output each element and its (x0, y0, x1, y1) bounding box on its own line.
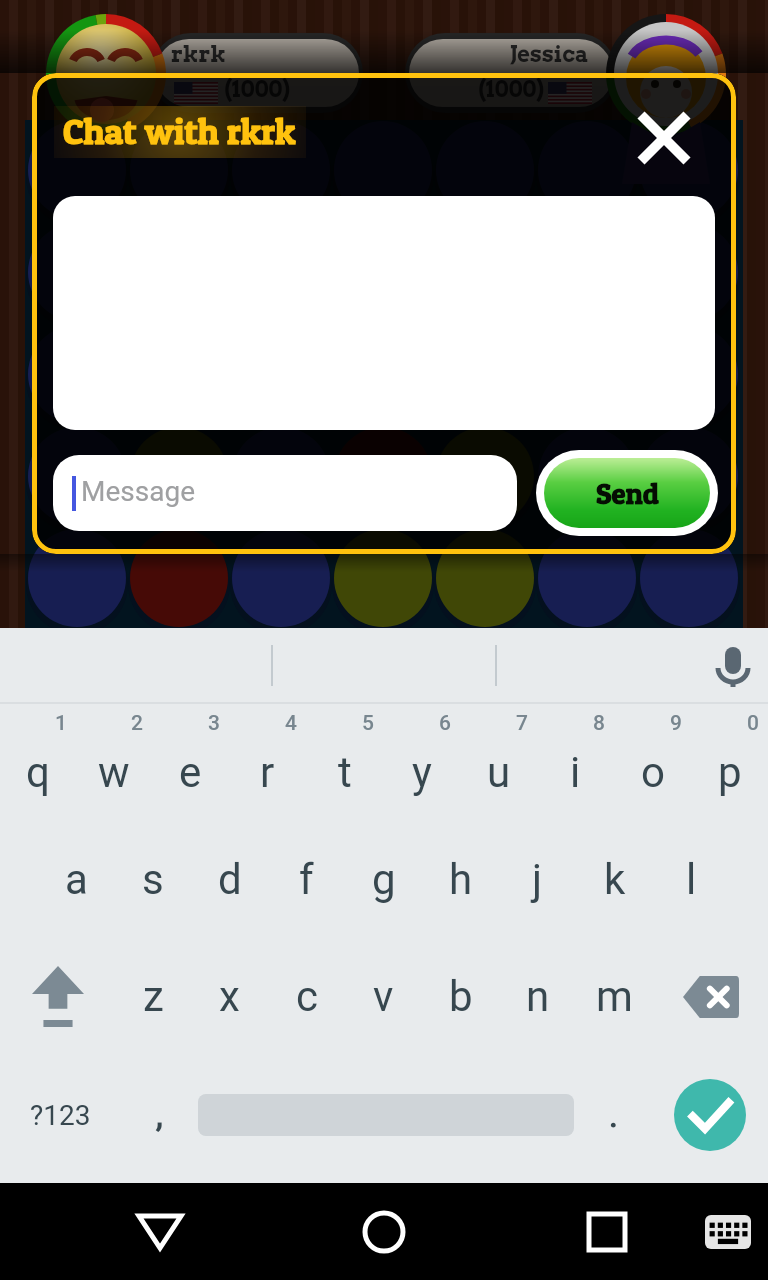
staticText: 6 (439, 711, 451, 736)
staticText: q (26, 748, 50, 797)
button[interactable]: j (499, 821, 576, 938)
staticText: k (604, 855, 626, 904)
staticText: 2 (131, 711, 143, 736)
button[interactable]: Close chat (629, 103, 699, 173)
button[interactable]: Shift (0, 938, 115, 1055)
button[interactable]: 7 (460, 704, 537, 821)
button[interactable]: h (422, 821, 499, 938)
button[interactable]: c (268, 938, 345, 1055)
staticText: p (718, 748, 742, 797)
staticText: y (412, 748, 432, 797)
staticText: h (449, 855, 473, 904)
staticText: a (65, 855, 88, 904)
button[interactable]: Home (336, 1183, 432, 1280)
staticText: 7 (516, 711, 528, 736)
button[interactable]: , (120, 1055, 198, 1175)
button[interactable]: 8 (537, 704, 614, 821)
staticText: r (260, 748, 275, 797)
button[interactable]: n (499, 938, 576, 1055)
staticText: f (299, 855, 314, 904)
staticText: , (156, 1095, 163, 1135)
button[interactable]: Send (536, 450, 718, 536)
staticText: z (143, 972, 164, 1021)
staticText: 3 (208, 711, 220, 736)
button[interactable]: 3 (152, 704, 229, 821)
button[interactable]: d (191, 821, 268, 938)
staticText: 5 (362, 711, 374, 736)
button[interactable]: v (345, 938, 422, 1055)
staticText: 4 (285, 711, 297, 736)
staticText: c (296, 972, 318, 1021)
button[interactable]: 1 (0, 704, 76, 821)
button[interactable]: s (114, 821, 191, 938)
staticText: 9 (670, 711, 682, 736)
staticText: o (641, 748, 665, 797)
staticText: e (179, 748, 202, 797)
staticText: u (487, 748, 511, 797)
staticText: t (338, 748, 352, 797)
staticText: d (218, 855, 242, 904)
staticText: (1000) (224, 76, 291, 103)
staticText: w (98, 748, 130, 797)
button[interactable]: Message (53, 455, 517, 531)
button[interactable]: a (38, 821, 114, 938)
staticText: Jessica (510, 41, 589, 68)
button[interactable]: Backspace (653, 938, 768, 1055)
button[interactable]: b (422, 938, 499, 1055)
button[interactable]: ?123 (0, 1055, 120, 1175)
button[interactable]: g (345, 821, 422, 938)
staticText: rkrk (171, 41, 226, 68)
button[interactable]: Recent apps (559, 1183, 655, 1280)
staticText: v (373, 972, 394, 1021)
staticText: j (532, 855, 543, 904)
button[interactable]: . (574, 1055, 652, 1175)
staticText: . (609, 1095, 618, 1135)
button[interactable]: Enter (652, 1055, 768, 1175)
button[interactable]: z (115, 938, 191, 1055)
button[interactable]: 0 (691, 704, 768, 821)
button[interactable]: Back (112, 1183, 208, 1280)
staticText: Chat with rkrk (63, 109, 296, 153)
staticText: b (449, 972, 473, 1021)
staticText: 8 (593, 711, 605, 736)
button[interactable]: Switch keyboard (688, 1183, 768, 1280)
button[interactable]: m (576, 938, 653, 1055)
staticText: 1 (55, 711, 67, 736)
button[interactable]: 4 (229, 704, 306, 821)
staticText: ?123 (30, 1099, 91, 1132)
staticText: x (219, 972, 240, 1021)
staticText: n (526, 972, 550, 1021)
staticText: s (142, 855, 164, 904)
staticText: i (570, 748, 581, 797)
staticText: l (686, 855, 697, 904)
staticText: (1000) (478, 76, 545, 103)
button[interactable]: Voice input (702, 644, 762, 688)
button[interactable]: k (576, 821, 653, 938)
button[interactable]: 5 (306, 704, 383, 821)
staticText: m (596, 972, 633, 1021)
staticText: Message (81, 475, 195, 508)
staticText: g (372, 855, 396, 904)
button[interactable]: l (653, 821, 730, 938)
staticText: 0 (747, 711, 759, 736)
staticText: Send (596, 476, 659, 511)
button[interactable]: x (191, 938, 268, 1055)
button[interactable]: 6 (383, 704, 460, 821)
button[interactable]: 9 (614, 704, 691, 821)
button[interactable]: 2 (76, 704, 152, 821)
button[interactable]: f (268, 821, 345, 938)
